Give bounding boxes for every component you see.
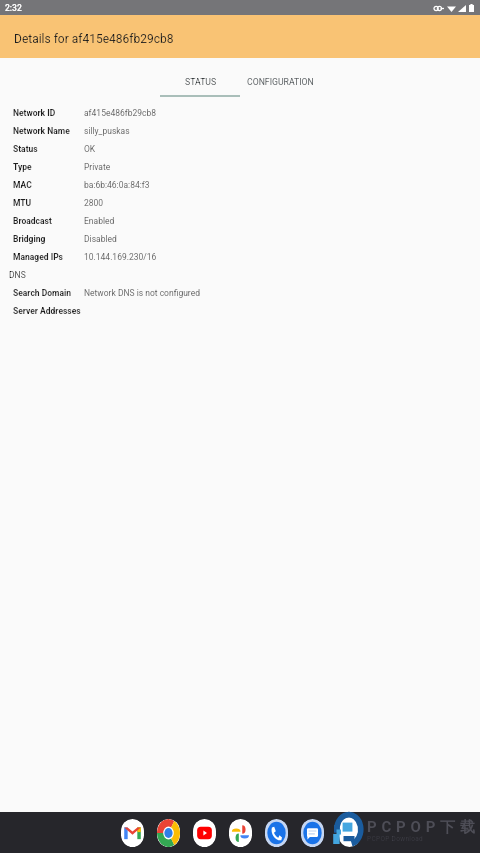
button[interactable]: CONFIGURATION [240, 76, 320, 88]
button[interactable]: Phone [265, 819, 288, 847]
button[interactable]: MAC [0, 176, 480, 194]
staticText: OK [84, 144, 96, 154]
button[interactable]: Type [0, 158, 480, 176]
button[interactable]: STATUS [161, 76, 240, 88]
button[interactable]: MTU [0, 194, 480, 212]
button[interactable]: Server Addresses [0, 302, 480, 320]
button[interactable]: Browser [339, 817, 360, 847]
staticText: MTU [13, 198, 32, 208]
button[interactable]: Search Domain [0, 284, 480, 302]
staticText: af415e486fb29cb8 [84, 108, 157, 118]
staticText: MAC [13, 180, 32, 190]
staticText: Status [13, 144, 38, 154]
button[interactable]: Photos [229, 819, 252, 847]
button[interactable]: Network ID [0, 104, 480, 122]
staticText: silly_puskas [84, 126, 130, 136]
staticText: Details for af415e486fb29cb8 [14, 32, 174, 46]
button[interactable]: Managed IPs [0, 248, 480, 266]
staticText: 10.144.169.230/16 [84, 252, 157, 262]
staticText: CONFIGURATION [247, 77, 314, 87]
staticText: Search Domain [13, 288, 71, 298]
staticText: Server Addresses [13, 306, 81, 316]
staticText: Disabled [84, 234, 117, 244]
staticText: Bridging [13, 234, 46, 244]
staticText: Type [13, 162, 32, 172]
button[interactable]: Bridging [0, 230, 480, 248]
button[interactable]: Details for af415e486fb29cb8 [0, 15, 480, 58]
button[interactable]: YouTube [193, 819, 216, 847]
button[interactable]: Gmail [121, 819, 144, 847]
staticText: Network DNS is not configured [84, 288, 200, 298]
button[interactable]: Status [0, 140, 480, 158]
staticText: 2:32 [5, 3, 22, 13]
staticText: PCPOP Download [367, 835, 424, 843]
staticText: DNS [9, 270, 26, 280]
staticText: PCPOP下载 [367, 818, 480, 837]
button[interactable]: Network Name [0, 122, 480, 140]
staticText: 2800 [84, 198, 104, 208]
staticText: ba:6b:46:0a:84:f3 [84, 180, 150, 190]
staticText: Private [84, 162, 111, 172]
staticText: Managed IPs [13, 252, 63, 262]
staticText: STATUS [185, 77, 217, 87]
button[interactable]: Chrome [157, 819, 180, 847]
staticText: Network ID [13, 108, 56, 118]
staticText: Network Name [13, 126, 70, 136]
button[interactable]: Messages [301, 819, 324, 847]
staticText: Enabled [84, 216, 115, 226]
staticText: Broadcast [13, 216, 52, 226]
button[interactable]: Broadcast [0, 212, 480, 230]
